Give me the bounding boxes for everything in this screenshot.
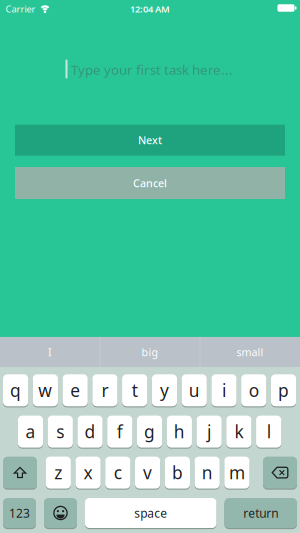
button[interactable]: i — [211, 374, 237, 406]
button[interactable]: q — [3, 374, 28, 406]
staticText: o — [249, 379, 259, 402]
staticText: m — [229, 461, 245, 484]
staticText: w — [38, 379, 52, 402]
button[interactable]: j — [196, 416, 222, 448]
button[interactable]: g — [137, 416, 162, 448]
staticText: n — [202, 461, 213, 484]
button[interactable]: z — [46, 457, 71, 489]
button[interactable]: b — [165, 457, 190, 489]
staticText: v — [143, 461, 152, 484]
button[interactable]: small — [200, 337, 299, 367]
staticText: r — [101, 379, 108, 402]
staticText: j — [207, 420, 211, 443]
staticText: u — [189, 379, 200, 402]
button[interactable]: Next — [15, 125, 285, 156]
staticText: Next — [138, 133, 162, 147]
button[interactable]: Cancel — [15, 167, 285, 199]
button[interactable]: Delete — [263, 457, 297, 489]
button[interactable]: f — [107, 416, 132, 448]
staticText: g — [144, 420, 155, 443]
staticText: c — [114, 461, 122, 484]
staticText: I — [48, 345, 52, 359]
button[interactable]: k — [226, 416, 251, 448]
button[interactable]: Emoji — [44, 498, 77, 528]
button[interactable]: Shift — [3, 457, 37, 489]
staticText: x — [84, 461, 93, 484]
staticText: p — [278, 379, 289, 402]
button[interactable]: h — [167, 416, 192, 448]
button[interactable]: r — [92, 374, 117, 406]
button[interactable]: l — [256, 416, 281, 448]
button[interactable]: v — [135, 457, 160, 489]
staticText: Cancel — [133, 176, 167, 190]
staticText: q — [10, 379, 21, 402]
button[interactable]: e — [62, 374, 88, 406]
staticText: h — [174, 420, 185, 443]
staticText: e — [70, 379, 80, 402]
button[interactable]: s — [48, 416, 73, 448]
button[interactable]: Numbers — [3, 498, 36, 528]
staticText: s — [56, 420, 64, 443]
button[interactable]: w — [33, 374, 58, 406]
staticText: t — [132, 379, 138, 402]
staticText: 123 — [9, 505, 30, 521]
staticText: b — [172, 461, 183, 484]
staticText: big — [141, 345, 158, 359]
staticText: a — [25, 420, 35, 443]
button[interactable]: a — [18, 416, 43, 448]
staticText: k — [234, 420, 243, 443]
button[interactable]: x — [75, 457, 101, 489]
staticText: space — [134, 505, 167, 521]
staticText: l — [267, 420, 271, 443]
staticText: Carrier — [5, 3, 35, 15]
button[interactable]: t — [122, 374, 147, 406]
staticText: Type your first task here... — [71, 61, 233, 78]
staticText: return — [243, 505, 278, 521]
button[interactable]: n — [194, 457, 220, 489]
button[interactable]: y — [152, 374, 177, 406]
button[interactable]: o — [241, 374, 266, 406]
staticText: d — [84, 420, 95, 443]
staticText: y — [160, 379, 169, 402]
button[interactable]: d — [77, 416, 103, 448]
staticText: z — [54, 461, 62, 484]
button[interactable]: space — [85, 498, 216, 528]
staticText: i — [222, 379, 226, 402]
button[interactable]: u — [182, 374, 207, 406]
staticText: 12:04 AM — [130, 3, 170, 15]
button[interactable]: big — [100, 337, 199, 367]
button[interactable]: c — [105, 457, 130, 489]
button[interactable]: p — [271, 374, 296, 406]
button[interactable]: m — [224, 457, 249, 489]
staticText: small — [236, 345, 263, 359]
staticText: f — [117, 420, 123, 443]
button[interactable]: return — [224, 498, 297, 528]
